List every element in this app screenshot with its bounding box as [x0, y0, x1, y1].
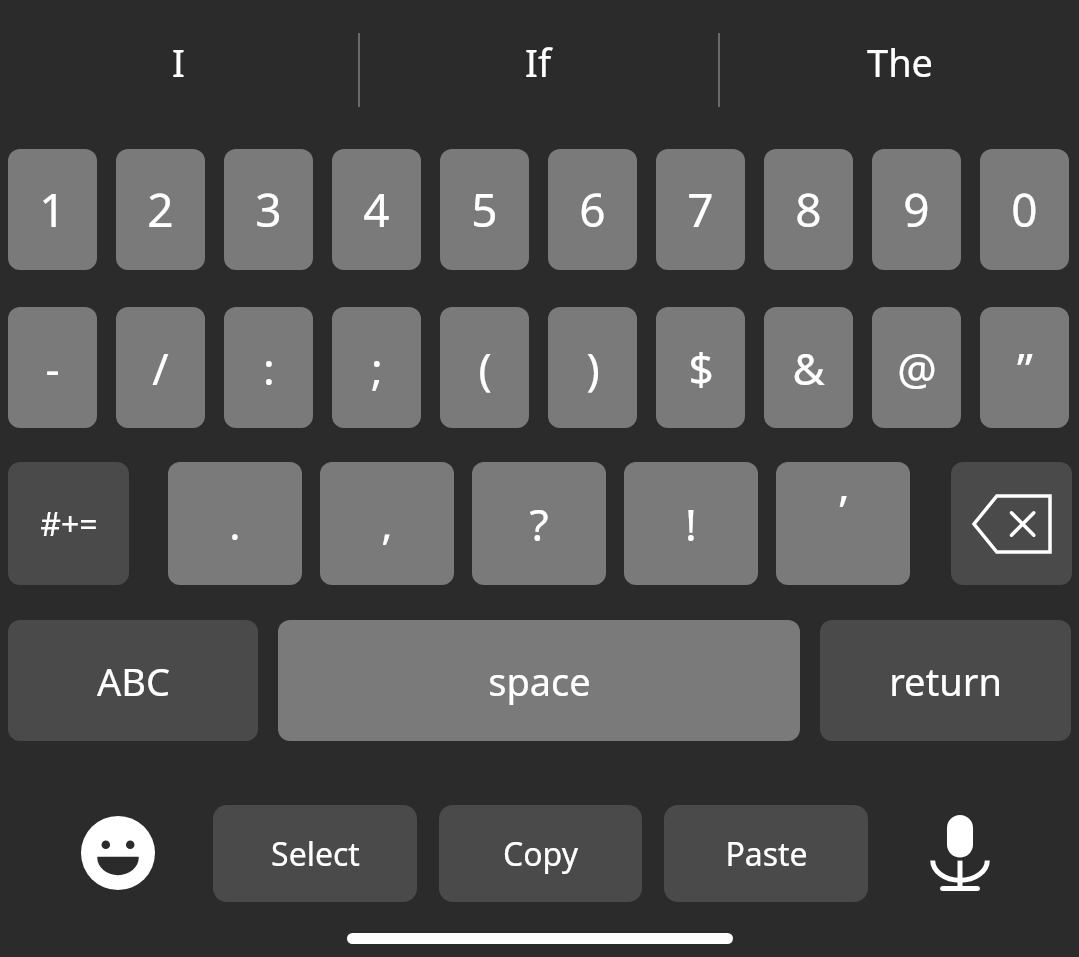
- button[interactable]: The: [790, 20, 1010, 104]
- staticText: If: [525, 36, 551, 88]
- staticText: 4: [363, 178, 390, 241]
- button[interactable]: Select: [213, 805, 417, 902]
- staticText: 9: [903, 178, 930, 241]
- staticText: 2: [147, 178, 174, 241]
- staticText: 6: [579, 178, 606, 241]
- button[interactable]: Voice input: [920, 813, 1000, 893]
- staticText: ;: [371, 338, 383, 398]
- button[interactable]: 0: [980, 149, 1069, 270]
- staticText: 8: [795, 178, 822, 241]
- button[interactable]: Delete: [951, 462, 1072, 585]
- staticText: I: [172, 36, 185, 88]
- staticText: .: [229, 495, 241, 552]
- button[interactable]: ): [548, 307, 637, 428]
- staticText: /: [152, 338, 169, 398]
- staticText: Paste: [725, 832, 808, 876]
- staticText: -: [45, 338, 60, 398]
- button[interactable]: 6: [548, 149, 637, 270]
- staticText: :: [263, 338, 275, 398]
- staticText: ,: [381, 495, 393, 552]
- button[interactable]: return: [820, 620, 1071, 741]
- button[interactable]: ”: [980, 307, 1069, 428]
- staticText: The: [867, 36, 934, 88]
- staticText: ABC: [97, 655, 170, 707]
- staticText: #+=: [40, 502, 98, 546]
- button[interactable]: /: [116, 307, 205, 428]
- button[interactable]: ?: [472, 462, 606, 585]
- button[interactable]: &: [764, 307, 853, 428]
- button[interactable]: -: [8, 307, 97, 428]
- staticText: Copy: [503, 832, 578, 876]
- staticText: ?: [529, 494, 549, 554]
- button[interactable]: !: [624, 462, 758, 585]
- button[interactable]: ABC: [8, 620, 258, 741]
- button[interactable]: If: [428, 20, 648, 104]
- button[interactable]: ’: [776, 462, 910, 585]
- staticText: ’: [839, 480, 847, 540]
- button[interactable]: ;: [332, 307, 421, 428]
- button[interactable]: 5: [440, 149, 529, 270]
- staticText: @: [897, 338, 937, 398]
- button[interactable]: Emoji: [78, 813, 158, 893]
- staticText: Select: [271, 832, 360, 876]
- button[interactable]: 7: [656, 149, 745, 270]
- staticText: $: [688, 338, 714, 398]
- button[interactable]: :: [224, 307, 313, 428]
- staticText: space: [488, 655, 591, 707]
- button[interactable]: 4: [332, 149, 421, 270]
- staticText: 3: [255, 178, 282, 241]
- staticText: (: [478, 338, 492, 398]
- button[interactable]: .: [168, 462, 302, 585]
- button[interactable]: #+=: [8, 462, 129, 585]
- button[interactable]: 2: [116, 149, 205, 270]
- staticText: return: [889, 655, 1002, 707]
- button[interactable]: 9: [872, 149, 961, 270]
- button[interactable]: I: [68, 20, 288, 104]
- button[interactable]: space: [278, 620, 800, 741]
- button[interactable]: 1: [8, 149, 97, 270]
- button[interactable]: Copy: [439, 805, 642, 902]
- staticText: 5: [471, 178, 498, 241]
- button[interactable]: ,: [320, 462, 454, 585]
- button[interactable]: 8: [764, 149, 853, 270]
- staticText: 7: [687, 178, 714, 241]
- staticText: &: [792, 338, 825, 398]
- button[interactable]: $: [656, 307, 745, 428]
- staticText: !: [685, 494, 697, 554]
- staticText: 0: [1011, 178, 1038, 241]
- button[interactable]: (: [440, 307, 529, 428]
- button[interactable]: Paste: [664, 805, 868, 902]
- button[interactable]: 3: [224, 149, 313, 270]
- staticText: 1: [39, 178, 66, 241]
- button[interactable]: @: [872, 307, 961, 428]
- staticText: ”: [1017, 338, 1033, 398]
- staticText: ): [586, 338, 600, 398]
